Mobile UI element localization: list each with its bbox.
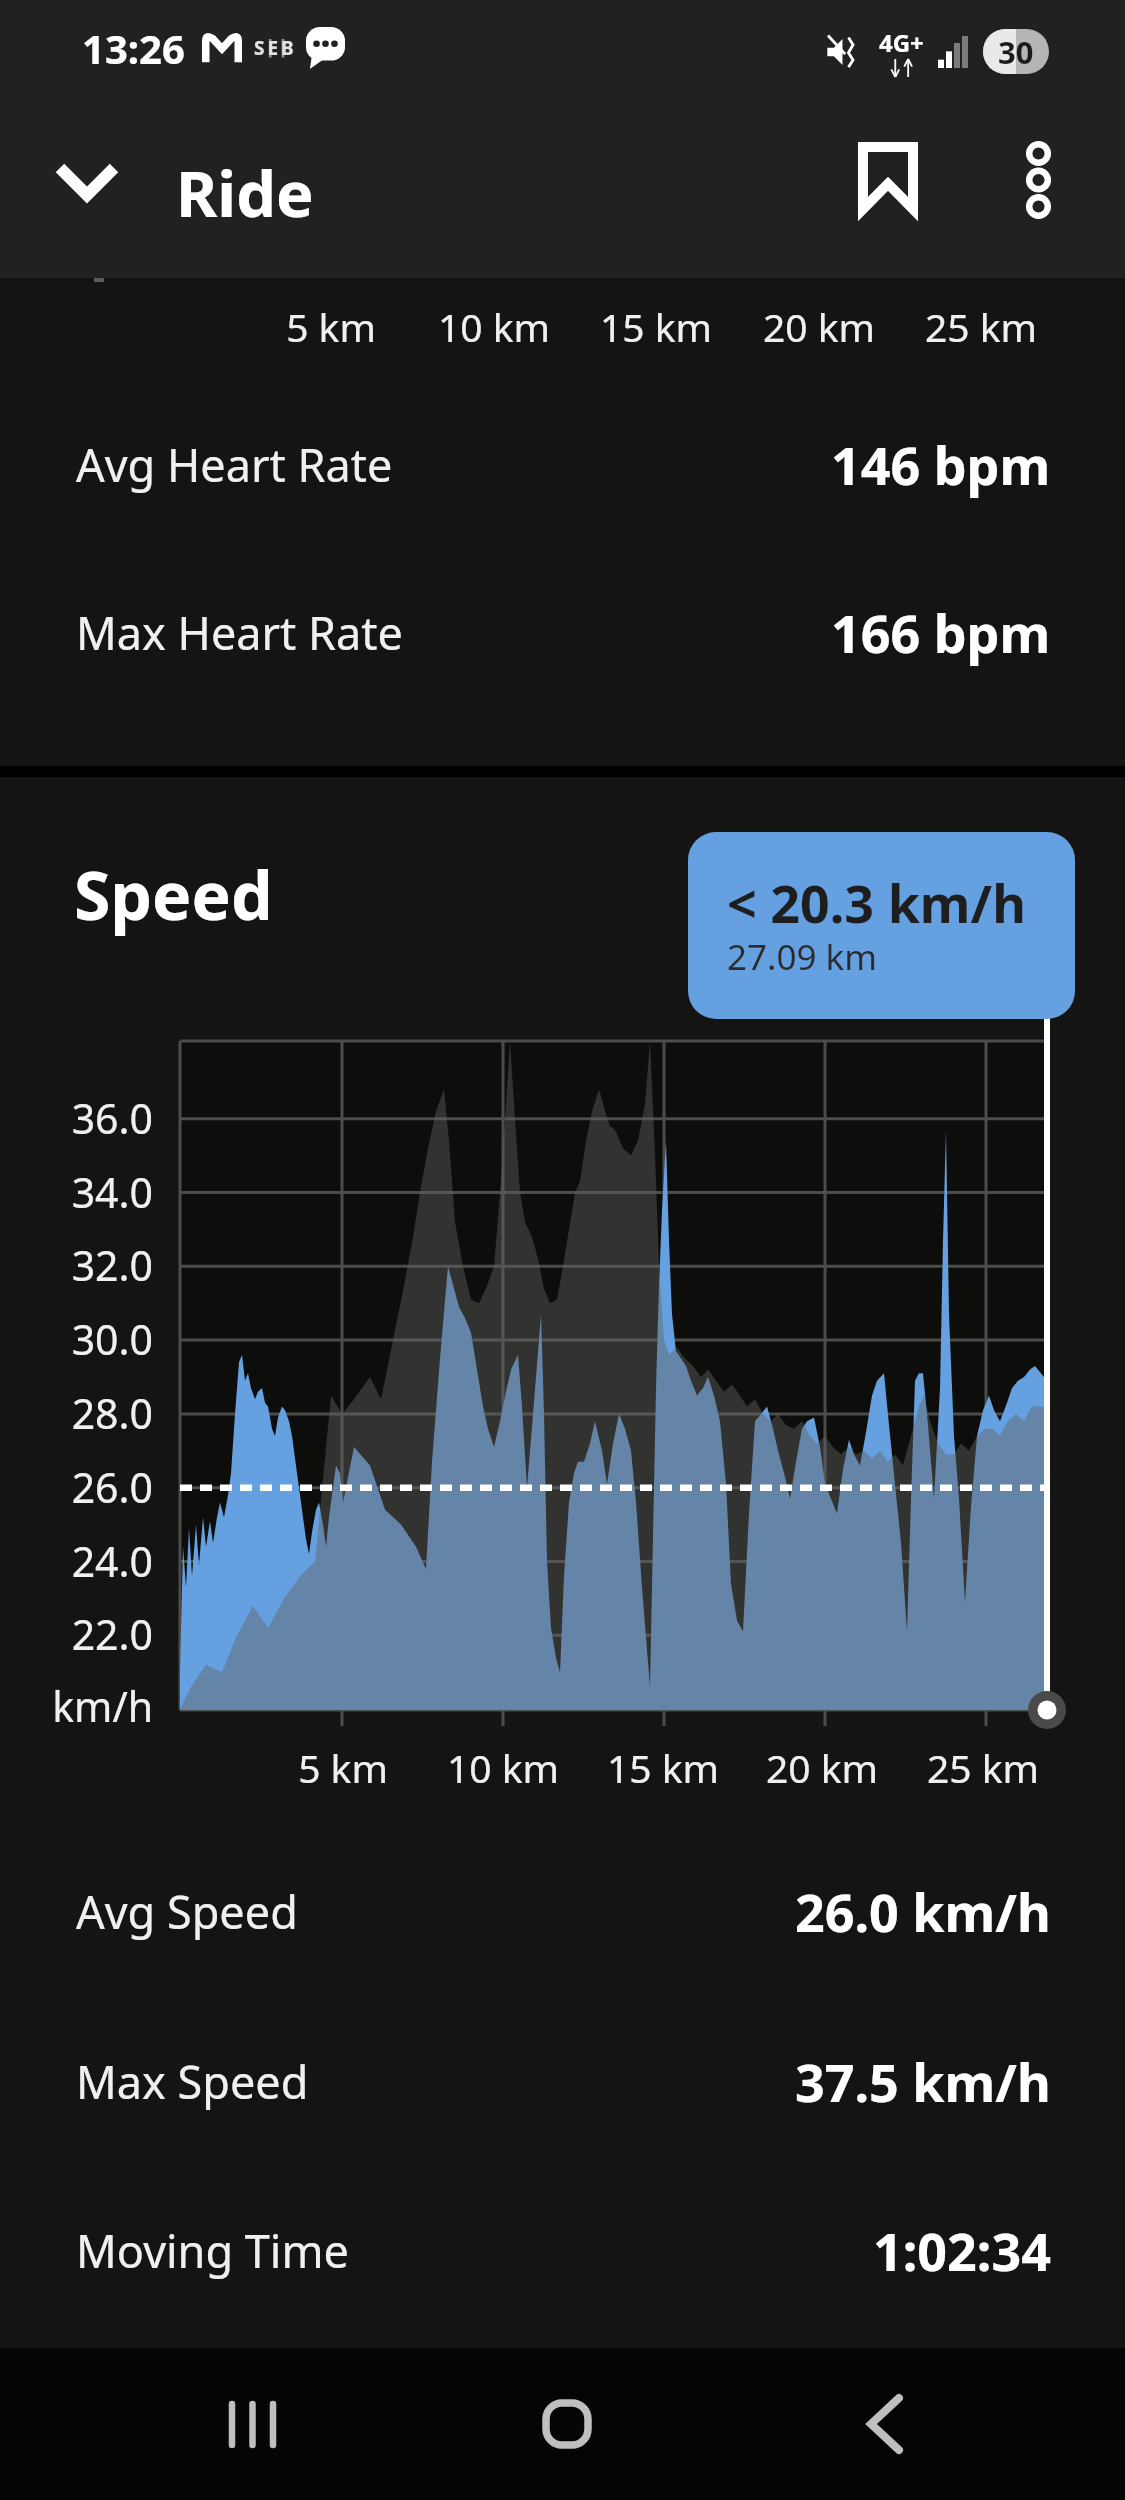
staticText: Avg Speed xyxy=(76,1881,298,1942)
button[interactable]: Collapse xyxy=(29,123,145,239)
button[interactable]: Bookmark xyxy=(830,120,946,236)
staticText: 166 bpm xyxy=(831,597,1051,668)
staticText: 37.5 km/h xyxy=(795,2046,1051,2117)
button[interactable]: Avg Speed xyxy=(0,1856,1125,1966)
button[interactable]: Avg Heart Rate xyxy=(0,409,1125,519)
staticText: < 20.3 km/h xyxy=(727,867,1026,938)
button[interactable]: Max Heart Rate xyxy=(0,577,1125,687)
staticText: 20 km xyxy=(722,1741,922,1794)
staticText: Max Heart Rate xyxy=(76,602,403,663)
staticText: 25 km xyxy=(883,1741,1083,1794)
staticText: 26.0 xyxy=(0,1459,153,1515)
staticText: SEB xyxy=(254,35,297,61)
staticText: 4G+ xyxy=(879,26,924,59)
staticText: km/h xyxy=(0,1678,153,1734)
button[interactable]: < 20.3 km/h xyxy=(688,832,1075,1019)
button[interactable]: Moving Time xyxy=(0,2195,1125,2305)
staticText: 27.09 km xyxy=(727,933,877,981)
staticText: 25 km xyxy=(881,300,1081,353)
staticText: 24.0 xyxy=(0,1533,153,1589)
staticText: Speed xyxy=(74,849,273,939)
button[interactable]: Max Speed xyxy=(0,2026,1125,2136)
button[interactable]: Recent apps xyxy=(172,2348,332,2500)
staticText: 5 km xyxy=(231,300,431,353)
staticText: 10 km xyxy=(403,1741,603,1794)
staticText: 10 km xyxy=(394,300,594,353)
staticText: Max Speed xyxy=(76,2051,309,2112)
staticText: 30 xyxy=(998,31,1034,73)
button[interactable]: Home xyxy=(487,2348,647,2500)
staticText: 146 bpm xyxy=(831,429,1051,500)
staticText: Ride xyxy=(176,150,314,236)
staticText: 36.0 xyxy=(0,1090,153,1146)
button[interactable]: More options xyxy=(980,122,1096,238)
staticText: Moving Time xyxy=(76,2220,349,2281)
staticText: 26.0 km/h xyxy=(795,1876,1051,1947)
staticText: 15 km xyxy=(563,1741,763,1794)
staticText: 22.0 xyxy=(0,1606,153,1662)
staticText: Avg Heart Rate xyxy=(76,434,393,495)
staticText: 32.0 xyxy=(0,1237,153,1293)
staticText: 5 km xyxy=(243,1741,443,1794)
staticText: 28.0 xyxy=(0,1385,153,1441)
staticText: 34.0 xyxy=(0,1164,153,1220)
button[interactable]: Back xyxy=(805,2348,965,2500)
staticText: 20 km xyxy=(719,300,919,353)
staticText: 13:26 xyxy=(82,21,185,75)
staticText: 15 km xyxy=(556,300,756,353)
staticText: 1:02:34 xyxy=(873,2215,1051,2286)
staticText: 30.0 xyxy=(0,1311,153,1367)
